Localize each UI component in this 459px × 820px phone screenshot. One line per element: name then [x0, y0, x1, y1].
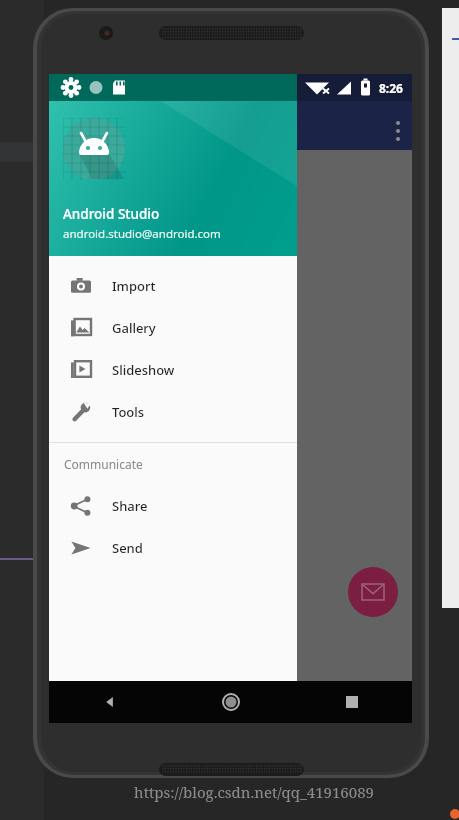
button[interactable]: Share [49, 485, 297, 527]
button[interactable]: Recent apps [291, 681, 412, 723]
button[interactable]: Android Studio [49, 101, 297, 256]
button[interactable]: Send [49, 527, 297, 569]
button[interactable]: Compose email [348, 567, 398, 617]
button[interactable]: More options [385, 116, 411, 146]
staticText: Share [112, 497, 148, 515]
button[interactable]: Tools [49, 391, 297, 433]
staticText: android.studio@android.com [63, 226, 221, 242]
staticText: Import [112, 277, 156, 295]
staticText: Tools [112, 403, 145, 421]
staticText: 8:26 [379, 80, 403, 96]
staticText: Android Studio [63, 205, 160, 223]
staticText: Slideshow [112, 361, 175, 379]
button[interactable]: Gallery [49, 307, 297, 349]
staticText: Communicate [64, 456, 143, 472]
staticText: Gallery [112, 319, 156, 337]
button[interactable]: Home [170, 681, 291, 723]
button[interactable]: Import [49, 265, 297, 307]
button[interactable]: Back [49, 681, 170, 723]
button[interactable]: Slideshow [49, 349, 297, 391]
staticText: https://blog.csdn.net/qq_41916089 [134, 782, 374, 802]
staticText: Send [112, 539, 143, 557]
